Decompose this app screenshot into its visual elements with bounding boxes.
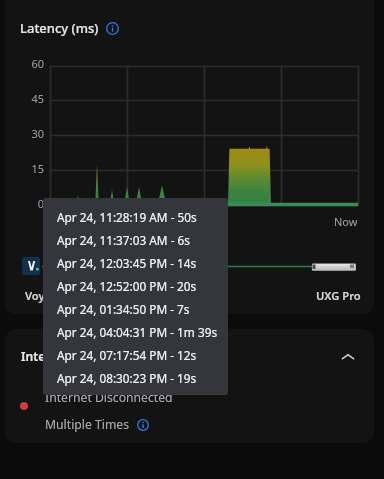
button[interactable]: Voyager device [22, 257, 40, 275]
staticText: Apr 24, 04:04:31 PM - 1m 39s [57, 324, 218, 340]
staticText: Apr 24, 12:03:45 PM - 14s [57, 255, 197, 271]
staticText: Multiple Times [45, 416, 129, 433]
button[interactable]: Info [136, 418, 150, 432]
button[interactable]: Internet [5, 333, 374, 380]
staticText: 15 [31, 161, 44, 176]
staticText: Internet [21, 348, 71, 365]
staticText: 45 [31, 91, 44, 106]
staticText: Latency (ms) [20, 19, 99, 37]
button[interactable]: Latency info [105, 21, 120, 36]
staticText: Apr 24, 11:37:03 AM - 6s [57, 232, 190, 248]
staticText: Apr 24, 07:17:54 PM - 12s [57, 347, 197, 363]
staticText: Internet Disconnected [45, 389, 173, 406]
staticText: Now [334, 214, 358, 229]
staticText: 0 [37, 196, 44, 211]
staticText: 60 [31, 56, 44, 71]
staticText: Apr 24, 12:52:00 PM - 20s [57, 278, 197, 294]
staticText: 30 [31, 126, 44, 141]
button[interactable]: UXG Pro device [310, 261, 358, 273]
staticText: Apr 24, 01:34:50 PM - 7s [57, 301, 190, 317]
staticText: Apr 24, 11:28:19 AM - 50s [57, 209, 197, 225]
button[interactable]: Latency (ms) [20, 19, 120, 37]
staticText: UXG Pro [316, 288, 361, 303]
staticText: Apr 24, 08:30:23 PM - 19s [57, 370, 197, 386]
staticText: Voyager [25, 288, 70, 303]
